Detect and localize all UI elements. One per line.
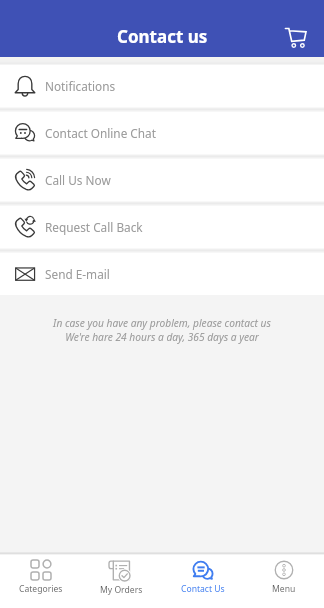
staticText: Notifications — [45, 78, 116, 94]
staticText: Menu — [272, 583, 296, 595]
button[interactable]: My Orders — [81, 555, 162, 608]
staticText: My Orders — [100, 584, 143, 596]
staticText: Call Us Now — [45, 172, 111, 188]
button[interactable]: Menu — [243, 555, 324, 608]
button[interactable]: Contact Us — [162, 555, 243, 608]
button[interactable]: Cart — [277, 18, 315, 56]
staticText: Request Call Back — [45, 219, 143, 235]
staticText: Categories — [19, 583, 63, 595]
staticText: In case you have any problem, please con… — [53, 316, 271, 330]
button[interactable]: Notifications — [0, 65, 324, 107]
staticText: We're hare 24 hours a day, 365 days a ye… — [65, 330, 259, 344]
button[interactable]: Call Us Now — [0, 159, 324, 201]
staticText: Send E-mail — [45, 266, 110, 282]
button[interactable]: Contact Online Chat — [0, 112, 324, 154]
button[interactable]: Categories — [0, 555, 81, 608]
button[interactable]: Request Call Back — [0, 206, 324, 248]
button[interactable]: Send E-mail — [0, 253, 324, 295]
staticText: Contact Us — [181, 583, 225, 595]
staticText: Contact Online Chat — [45, 125, 156, 141]
staticText: Contact us — [117, 25, 208, 48]
